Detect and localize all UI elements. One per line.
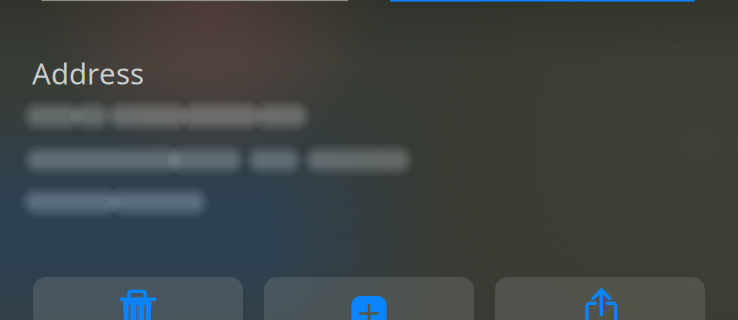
button[interactable]: Add to Contacts: [264, 277, 474, 320]
staticText: Address: [32, 53, 144, 92]
button[interactable]: Delete: [33, 277, 243, 320]
button[interactable]: Share: [495, 277, 705, 320]
